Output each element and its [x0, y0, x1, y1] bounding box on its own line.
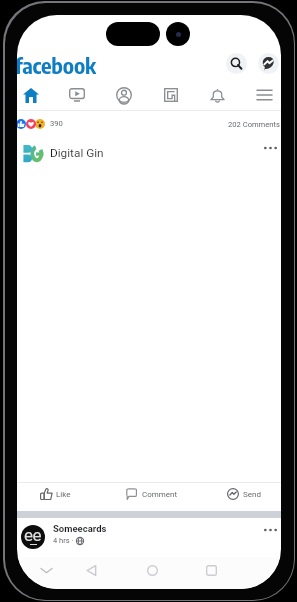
- button[interactable]: Video: [55, 81, 99, 109]
- button[interactable]: facebook: [17, 51, 96, 75]
- button[interactable]: Notifications: [195, 81, 239, 109]
- staticText: Digital Gin: [50, 146, 104, 160]
- button[interactable]: Digital Gin: [50, 146, 104, 160]
- staticText: Like: [56, 490, 71, 499]
- button[interactable]: Someecards: [53, 523, 107, 534]
- staticText: Someecards: [53, 523, 107, 534]
- button[interactable]: Home: [139, 557, 165, 583]
- button[interactable]: Menu: [242, 81, 281, 109]
- staticText: 390: [50, 119, 63, 128]
- button[interactable]: Marketplace: [149, 81, 193, 109]
- staticText: ee: [24, 525, 42, 545]
- button[interactable]: Comment: [125, 488, 180, 503]
- button[interactable]: Someecards page: [21, 525, 45, 549]
- staticText: Send: [243, 490, 261, 499]
- button[interactable]: Like: [40, 488, 75, 503]
- button[interactable]: Digital Gin page: [23, 144, 44, 165]
- button[interactable]: Home: [17, 81, 53, 109]
- button[interactable]: Search: [226, 53, 247, 74]
- staticText: 4 hrs ·: [53, 536, 76, 545]
- staticText: 202 Comments: [228, 120, 280, 129]
- button[interactable]: Back: [78, 557, 104, 583]
- button[interactable]: More options: [261, 522, 280, 537]
- staticText: facebook: [17, 51, 96, 75]
- button[interactable]: Profile: [102, 81, 146, 109]
- button[interactable]: Messenger: [258, 53, 279, 74]
- button[interactable]: Recent apps: [198, 557, 224, 583]
- staticText: Comment: [142, 490, 178, 499]
- button[interactable]: Hide keyboard: [33, 557, 59, 583]
- button[interactable]: Send: [227, 488, 265, 503]
- button[interactable]: More options: [261, 139, 280, 156]
